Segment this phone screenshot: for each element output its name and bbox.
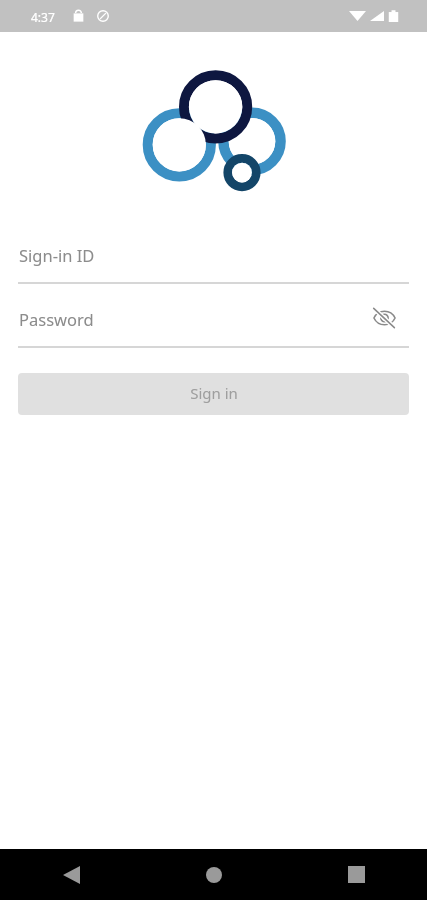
button[interactable]: Sign in [18,373,409,415]
button[interactable]: Sign-in ID [0,238,427,284]
button[interactable]: Show password [370,302,398,334]
button[interactable]: Recent apps [285,849,427,900]
staticText: Password [19,308,94,330]
button[interactable]: Back [0,849,143,900]
button[interactable]: Home [143,849,285,900]
button[interactable]: Password [0,302,427,348]
staticText: Sign-in ID [19,244,95,266]
staticText: Sign in [190,383,238,403]
staticText: 4:37 [31,9,55,25]
